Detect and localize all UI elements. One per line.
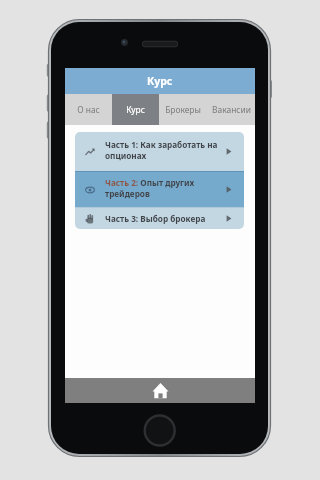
button[interactable]: Брокеры	[159, 94, 207, 125]
staticText: О нас	[77, 104, 100, 115]
button[interactable]: Вакансии	[207, 94, 255, 125]
staticText: Брокеры	[165, 104, 201, 115]
staticText: Часть 2: Опыт других трейдеров	[105, 177, 195, 200]
button[interactable]: Часть 2: Опыт других трейдеров	[75, 172, 244, 207]
button[interactable]: Курс	[112, 94, 159, 125]
staticText: Часть 1: Как заработать на опционах	[105, 139, 218, 162]
button[interactable]: Часть 1: Как заработать на опционах	[75, 132, 244, 171]
button[interactable]	[142, 378, 178, 403]
staticText: Вакансии	[212, 104, 251, 115]
button[interactable]: О нас	[65, 94, 112, 125]
staticText: Часть 3: Выбор брокера	[105, 213, 206, 224]
staticText: Курс	[147, 74, 173, 88]
button[interactable]: Часть 3: Выбор брокера	[75, 208, 244, 229]
staticText: Курс	[126, 104, 145, 115]
